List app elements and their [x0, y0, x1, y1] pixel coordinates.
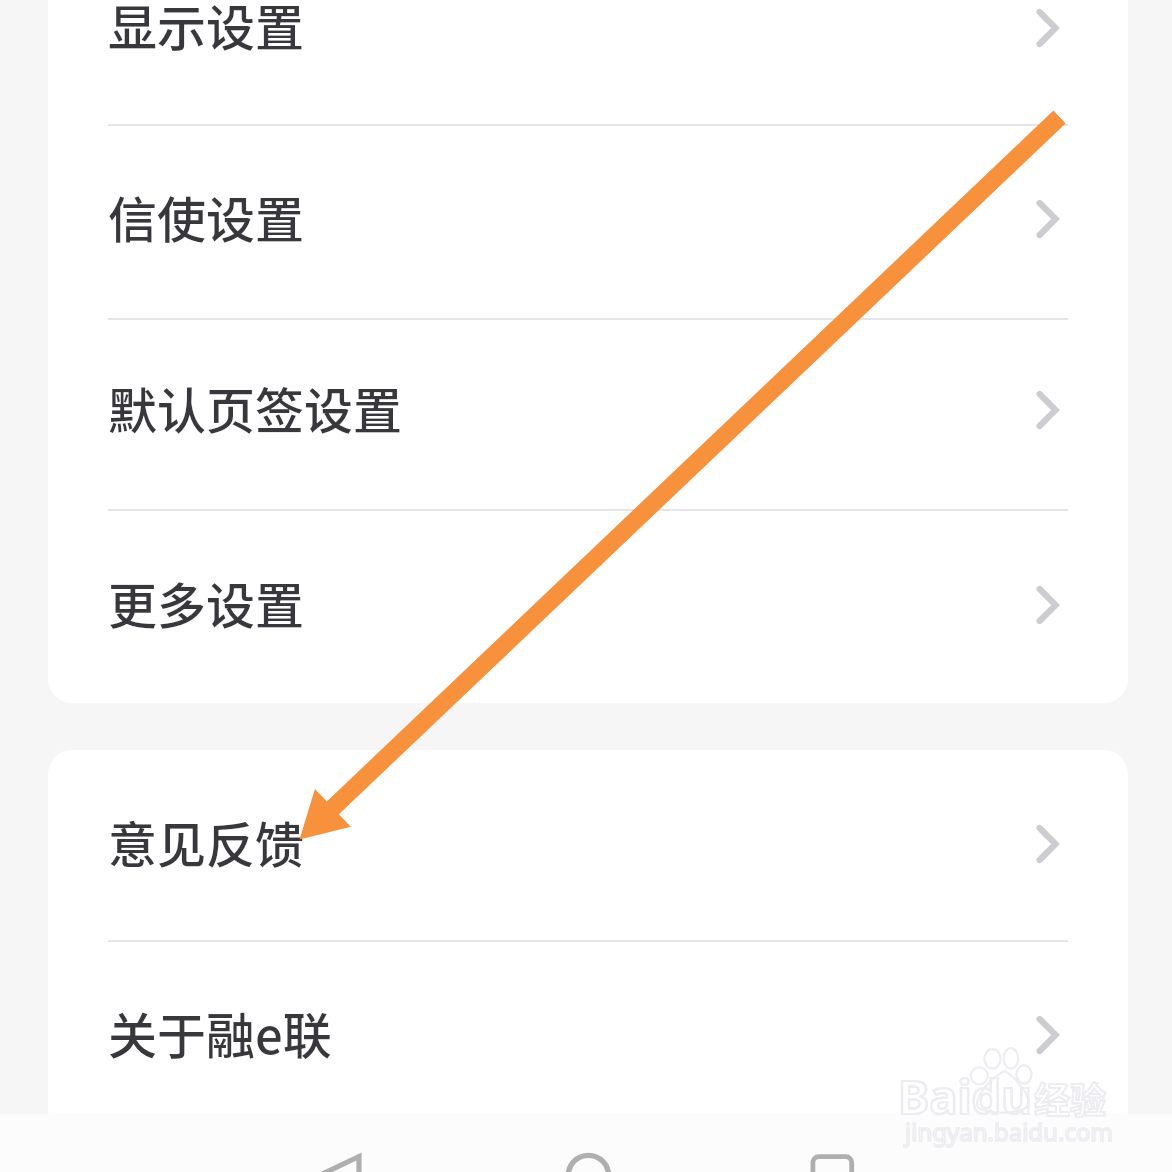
staticText: 更多设置	[108, 567, 305, 638]
staticText: 信使设置	[108, 181, 305, 252]
button[interactable]: 信使设置	[48, 126, 1128, 320]
staticText: 意见反馈	[108, 806, 305, 877]
staticText: jingyan.baidu.com	[905, 1115, 1113, 1148]
button[interactable]: 更多设置	[48, 511, 1128, 703]
button[interactable]: 默认页签设置	[48, 320, 1128, 511]
button[interactable]: 关于融e联	[48, 942, 1128, 1132]
staticText: 关于融e联	[108, 997, 332, 1068]
button[interactable]: 意见反馈	[48, 750, 1128, 942]
button[interactable]: Back	[285, 1114, 400, 1171]
button[interactable]: Home	[530, 1114, 645, 1171]
staticText: Baidu	[898, 1064, 1032, 1128]
staticText: 默认页签设置	[108, 372, 403, 443]
button[interactable]: 显示设置	[48, 0, 1128, 126]
staticText: 经验	[1034, 1072, 1107, 1124]
staticText: 显示设置	[108, 0, 305, 60]
button[interactable]: Recent apps	[775, 1114, 890, 1171]
